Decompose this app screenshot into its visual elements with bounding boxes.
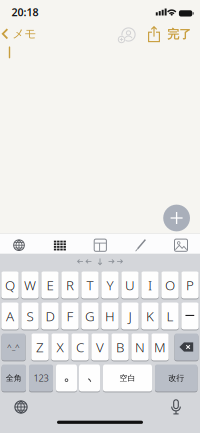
button[interactable]: F — [61, 302, 79, 330]
button[interactable]: I — [141, 271, 159, 299]
staticText: N — [135, 338, 145, 356]
staticText: メモ — [12, 26, 36, 41]
button[interactable]: Web — [13, 239, 25, 251]
button[interactable]: ^_^ — [2, 333, 26, 361]
button[interactable]: C — [71, 333, 89, 361]
button[interactable]: ー — [181, 302, 199, 330]
staticText: I — [148, 276, 152, 294]
staticText: O — [165, 276, 175, 294]
staticText: K — [146, 307, 154, 325]
button[interactable]: W — [21, 271, 39, 299]
staticText: 20:18 — [11, 5, 38, 19]
button[interactable]: L — [161, 302, 179, 330]
staticText: D — [45, 307, 54, 325]
button[interactable]: メモ — [2, 26, 36, 42]
button[interactable]: Dictate — [170, 399, 181, 415]
staticText: Z — [36, 338, 44, 356]
staticText: T — [86, 276, 93, 294]
staticText: Q — [5, 276, 15, 294]
staticText: M — [154, 338, 166, 356]
button[interactable]: V — [91, 333, 109, 361]
button[interactable]: Q — [1, 271, 19, 299]
button[interactable]: X — [51, 333, 69, 361]
button[interactable]: U — [121, 271, 139, 299]
button[interactable]: T — [81, 271, 99, 299]
button[interactable]: S — [21, 302, 39, 330]
button[interactable]: J — [121, 302, 139, 330]
button[interactable]: B — [111, 333, 129, 361]
staticText: P — [186, 276, 194, 294]
staticText: U — [125, 276, 135, 294]
button[interactable]: 空白 — [103, 364, 152, 392]
button[interactable]: R — [61, 271, 79, 299]
button[interactable]: 123 — [29, 364, 53, 392]
button[interactable]: Comma — [79, 364, 100, 392]
button[interactable]: 完了 — [167, 27, 191, 41]
staticText: ^_^ — [7, 342, 20, 352]
staticText: J — [128, 307, 131, 325]
button[interactable]: M — [151, 333, 169, 361]
staticText: Y — [106, 276, 113, 294]
button[interactable]: K — [141, 302, 159, 330]
button[interactable]: Z — [31, 333, 49, 361]
button[interactable]: Full stop — [56, 364, 77, 392]
staticText: L — [166, 307, 173, 325]
button[interactable]: A — [1, 302, 19, 330]
button[interactable]: Next keyboard — [14, 400, 28, 414]
button[interactable]: Y — [101, 271, 119, 299]
staticText: B — [116, 338, 124, 356]
button[interactable]: Add people — [113, 25, 139, 45]
staticText: 空白 — [119, 373, 135, 383]
button[interactable]: E — [41, 271, 59, 299]
staticText: 全角 — [6, 373, 22, 383]
staticText: F — [66, 307, 73, 325]
staticText: ー — [184, 309, 195, 322]
button[interactable]: Markup — [135, 238, 147, 252]
button[interactable]: Table — [94, 239, 106, 251]
staticText: A — [6, 307, 14, 325]
staticText: 123 — [33, 372, 48, 384]
button[interactable]: Keypad — [54, 241, 66, 251]
button[interactable]: G — [81, 302, 99, 330]
staticText: V — [96, 338, 104, 356]
button[interactable]: H — [101, 302, 119, 330]
staticText: H — [105, 307, 115, 325]
button[interactable]: O — [161, 271, 179, 299]
button[interactable]: 改行 — [155, 364, 197, 392]
staticText: E — [46, 276, 53, 294]
button[interactable]: Photo — [174, 239, 187, 251]
button[interactable]: Share — [147, 26, 161, 42]
button[interactable]: Expand input options — [163, 205, 190, 231]
button[interactable]: D — [41, 302, 59, 330]
staticText: 改行 — [168, 373, 184, 383]
staticText: R — [66, 276, 74, 294]
staticText: S — [26, 307, 33, 325]
button[interactable]: 全角 — [2, 364, 26, 392]
staticText: 完了 — [167, 27, 191, 41]
staticText: G — [85, 307, 95, 325]
staticText: C — [76, 338, 84, 356]
button[interactable]: N — [131, 333, 149, 361]
staticText: W — [24, 276, 36, 294]
button[interactable]: Delete — [174, 333, 198, 361]
button[interactable]: P — [181, 271, 199, 299]
staticText: X — [56, 338, 63, 356]
